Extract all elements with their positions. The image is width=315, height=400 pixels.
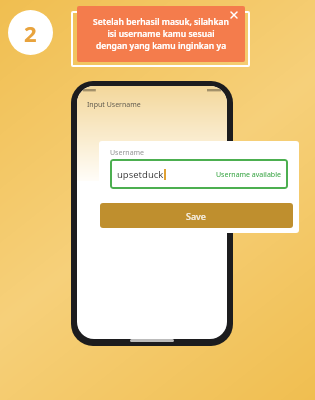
staticText: upsetduck: [117, 168, 164, 181]
staticText: Input Username: [87, 100, 141, 110]
button[interactable]: upsetduck: [110, 159, 288, 189]
staticText: Username available: [216, 170, 281, 180]
staticText: Save: [186, 210, 207, 222]
button[interactable]: Close: [229, 10, 239, 20]
staticText: Setelah berhasil masuk, silahkan isi use…: [93, 16, 229, 52]
button[interactable]: Save: [100, 203, 293, 228]
button[interactable]: Step 2: [8, 10, 53, 55]
staticText: Username: [110, 148, 145, 158]
staticText: 2: [24, 18, 37, 48]
